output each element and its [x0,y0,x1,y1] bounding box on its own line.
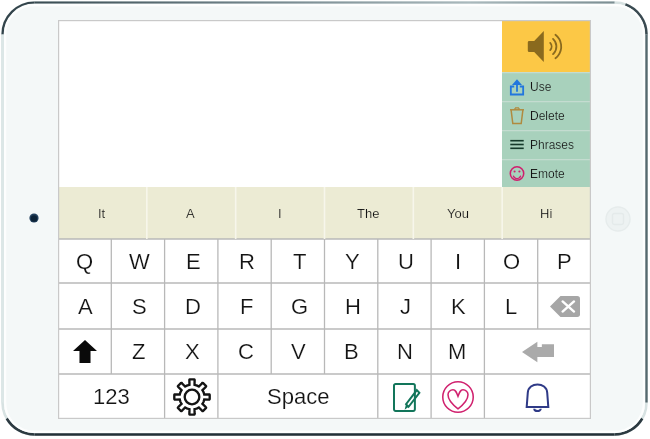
button[interactable]: R [220,239,273,283]
staticText: E [186,249,201,274]
staticText: Phrases [530,138,575,151]
staticText: L [505,294,518,319]
button[interactable]: Alerts [484,374,591,419]
button[interactable]: N [378,329,431,374]
staticText: Y [345,249,360,274]
staticText: Delete [530,109,565,122]
button[interactable]: I [235,187,324,239]
staticText: P [557,249,572,274]
button[interactable]: O [485,239,538,283]
button[interactable]: M [431,329,484,374]
staticText: C [238,339,254,364]
button[interactable]: P [538,239,591,283]
staticText: K [451,294,466,319]
button[interactable]: Settings [165,374,218,419]
button[interactable]: K [432,283,485,329]
button[interactable]: Speak [502,20,591,72]
button[interactable]: B [325,329,378,374]
staticText: Use [530,80,552,93]
staticText: I [278,206,282,221]
staticText: V [291,339,306,364]
staticText: J [400,294,411,319]
button[interactable]: Hi [502,187,591,239]
button[interactable]: E [166,239,220,283]
staticText: B [344,339,359,364]
button[interactable]: L [485,283,538,329]
button[interactable]: D [166,283,220,329]
button[interactable]: A [146,187,235,239]
staticText: A [78,294,93,319]
button[interactable]: X [166,329,219,374]
staticText: W [129,249,150,274]
button[interactable]: U [379,239,432,283]
staticText: R [239,249,255,274]
button[interactable]: Favourites [431,374,484,419]
button[interactable]: Space [218,374,378,419]
button[interactable]: C [219,329,272,374]
button[interactable]: It [58,187,146,239]
button[interactable]: Use [502,72,591,101]
button[interactable]: Z [112,329,166,374]
button[interactable]: I [432,239,485,283]
button[interactable]: W [112,239,166,283]
button[interactable] [58,20,502,187]
staticText: M [448,339,467,364]
button[interactable]: A [58,283,112,329]
button[interactable]: Delete [502,101,591,130]
staticText: Z [132,339,146,364]
button[interactable]: G [273,283,326,329]
button[interactable]: T [273,239,326,283]
button[interactable]: Phrases [502,130,591,159]
staticText: F [240,294,254,319]
button[interactable]: 123 [58,374,165,419]
staticText: A [186,206,195,221]
staticText: H [345,294,361,319]
button[interactable]: Shift [58,329,112,374]
button[interactable]: Return [484,329,591,374]
staticText: G [291,294,309,319]
staticText: Emote [530,167,565,180]
button[interactable]: V [272,329,325,374]
button[interactable]: You [413,187,502,239]
button[interactable]: J [379,283,432,329]
staticText: 123 [93,384,130,409]
staticText: O [503,249,521,274]
staticText: It [98,206,106,221]
staticText: D [185,294,201,319]
staticText: X [185,339,200,364]
staticText: You [447,206,469,221]
button[interactable]: F [220,283,273,329]
button[interactable]: The [324,187,413,239]
staticText: T [293,249,307,274]
button[interactable]: Backspace [538,283,591,329]
button[interactable]: Notes [378,374,431,419]
button[interactable]: S [112,283,166,329]
button[interactable]: H [326,283,379,329]
button[interactable]: Emote [502,159,591,187]
staticText: N [397,339,413,364]
staticText: S [132,294,147,319]
button[interactable]: Y [326,239,379,283]
button[interactable]: Q [58,239,112,283]
staticText: I [455,249,462,274]
staticText: The [357,206,380,221]
staticText: Space [267,384,330,409]
staticText: Q [76,249,94,274]
staticText: Hi [540,206,553,221]
staticText: U [398,249,414,274]
